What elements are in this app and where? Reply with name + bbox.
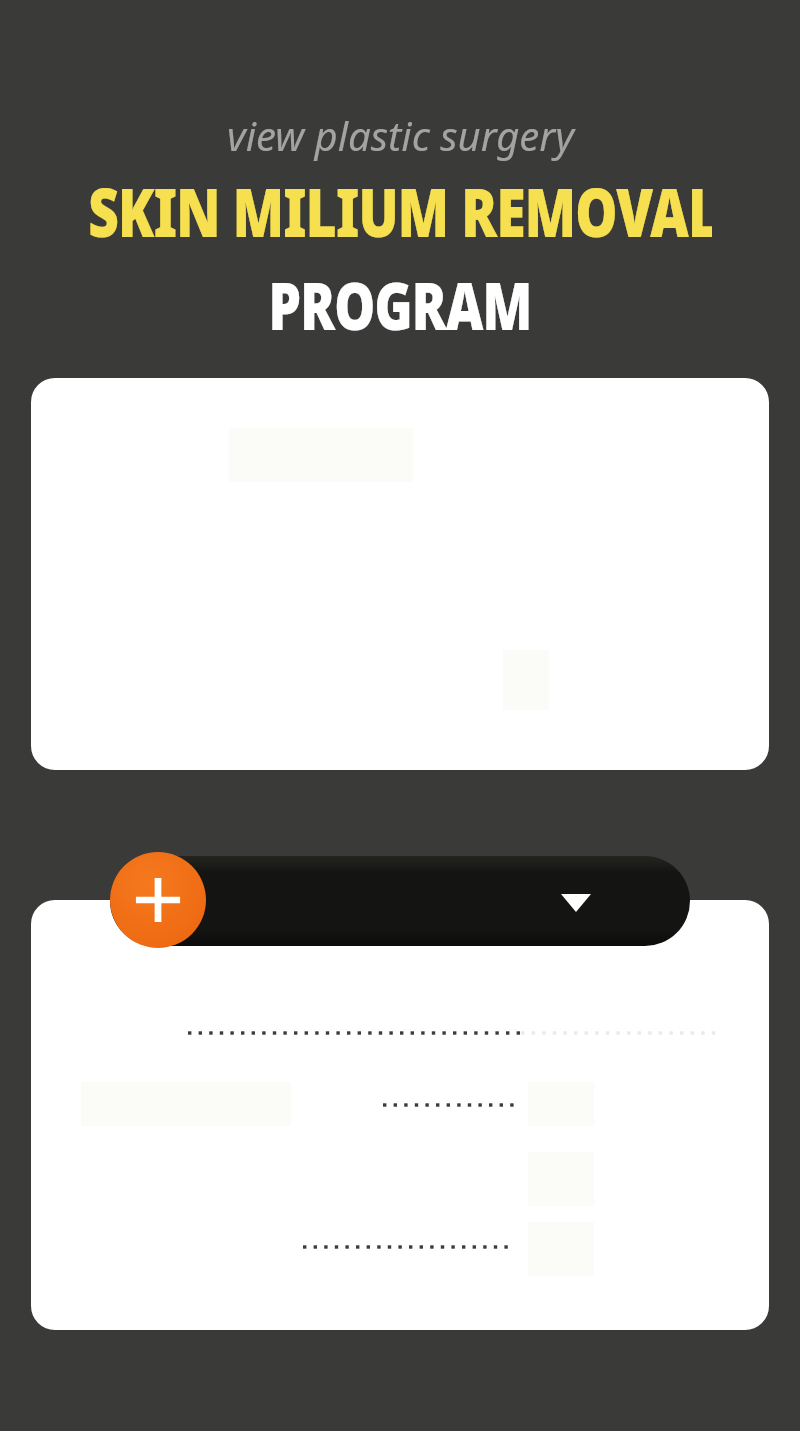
button[interactable] — [31, 378, 769, 770]
staticText: PROGRAM — [268, 259, 532, 349]
staticText: SKIN MILIUM REMOVAL — [88, 164, 712, 257]
staticText: view plastic surgery — [227, 108, 574, 162]
button[interactable] — [31, 900, 769, 1330]
button[interactable]: Open selector — [110, 856, 690, 946]
button[interactable]: Add — [110, 852, 206, 948]
